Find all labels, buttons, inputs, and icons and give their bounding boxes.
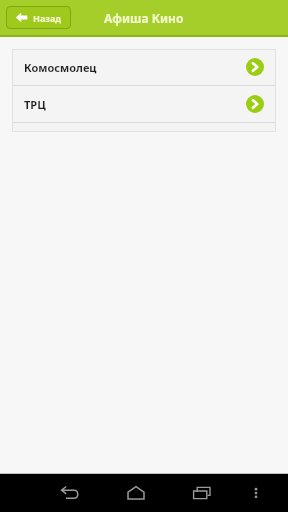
button[interactable]: Комосмолец <box>12 49 276 85</box>
button[interactable]: Back <box>37 474 103 512</box>
staticText: Комосмолец <box>24 60 246 75</box>
staticText: Назад <box>33 12 62 24</box>
other: Открыть Комосмолец <box>246 58 264 76</box>
other: Открыть ТРЦ <box>246 95 264 113</box>
button[interactable]: Назад <box>6 6 71 29</box>
button[interactable]: Recent apps <box>169 474 235 512</box>
button[interactable]: More options <box>235 474 276 512</box>
button[interactable]: ТРЦ <box>12 86 276 122</box>
staticText: Афиша Кино <box>104 10 184 26</box>
staticText: ТРЦ <box>24 97 246 112</box>
button[interactable]: Home <box>103 474 169 512</box>
